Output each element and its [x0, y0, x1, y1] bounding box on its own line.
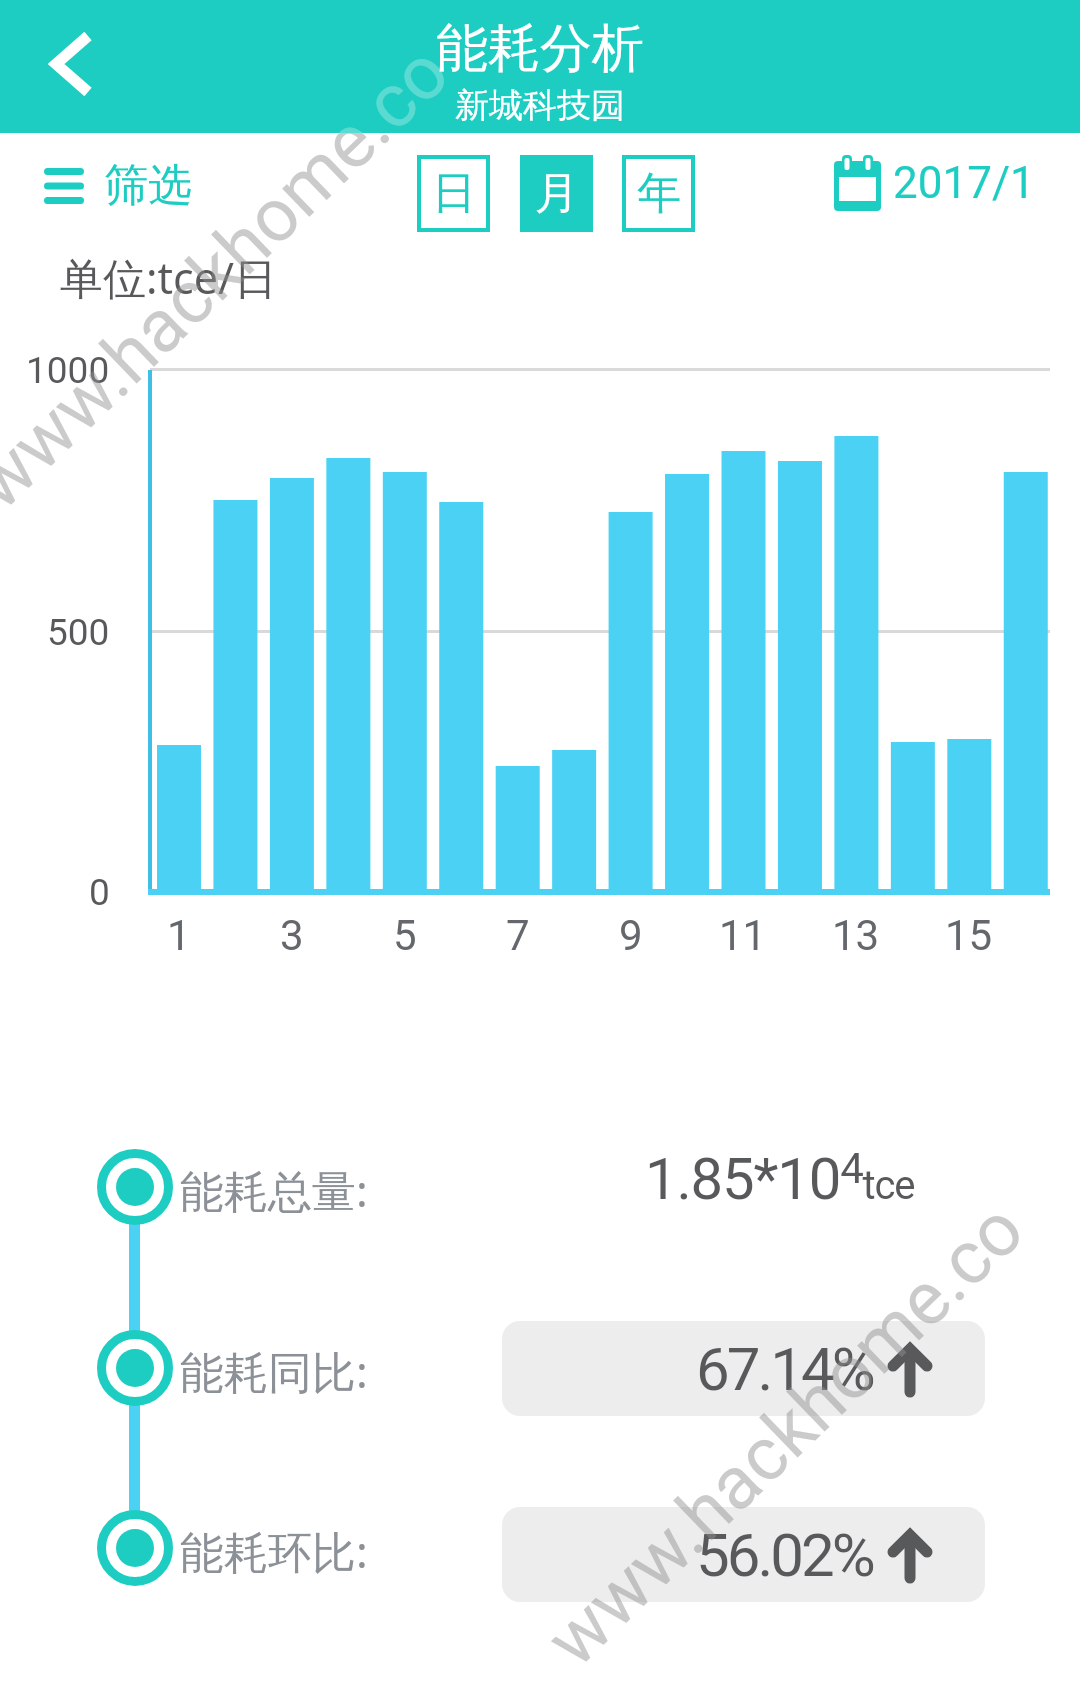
staticText: 筛选: [104, 158, 192, 213]
button[interactable]: 67.14%: [502, 1321, 985, 1416]
staticText: 新城科技园: [455, 84, 625, 126]
staticText: www.hackhome.com: [0, 133, 506, 529]
button[interactable]: 筛选: [44, 155, 192, 215]
staticText: www.hackhome.com: [529, 1148, 1080, 1685]
staticText: 1.85*104tce: [645, 1144, 915, 1213]
staticText: 9: [619, 911, 643, 960]
staticText: 能耗同比:: [180, 1341, 368, 1397]
button[interactable]: [20, 14, 120, 114]
button[interactable]: 年: [622, 155, 695, 232]
staticText: 2017/1: [893, 157, 1035, 209]
staticText: 能耗环比:: [180, 1521, 368, 1577]
staticText: 7: [506, 911, 530, 960]
button[interactable]: 56.02%: [502, 1507, 985, 1602]
staticText: 67.14%: [696, 1334, 873, 1404]
staticText: 56.02%: [696, 1520, 873, 1590]
staticText: 月: [535, 166, 579, 221]
staticText: 能耗分析: [436, 16, 644, 78]
staticText: 单位:tce/日: [60, 248, 277, 300]
staticText: 15: [945, 911, 993, 960]
staticText: 11: [719, 911, 767, 960]
staticText: 0: [89, 871, 110, 914]
button[interactable]: 日: [417, 155, 490, 232]
staticText: 1000: [26, 349, 110, 392]
button[interactable]: 2017/1: [834, 150, 1035, 216]
staticText: 能耗总量:: [180, 1160, 368, 1216]
staticText: 3: [280, 911, 304, 960]
staticText: 1: [167, 911, 191, 960]
staticText: 日: [432, 166, 476, 221]
staticText: 5: [393, 911, 417, 960]
staticText: www.hackhome.com: [0, 0, 506, 133]
staticText: 13: [832, 911, 880, 960]
button[interactable]: 月: [520, 155, 593, 232]
staticText: 年: [637, 166, 681, 221]
staticText: 500: [47, 611, 110, 654]
